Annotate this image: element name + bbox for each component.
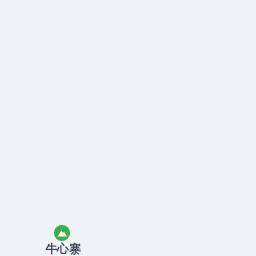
staticText: 牛心寨 (45, 242, 81, 256)
button[interactable]: 牛心寨 (44, 225, 80, 256)
